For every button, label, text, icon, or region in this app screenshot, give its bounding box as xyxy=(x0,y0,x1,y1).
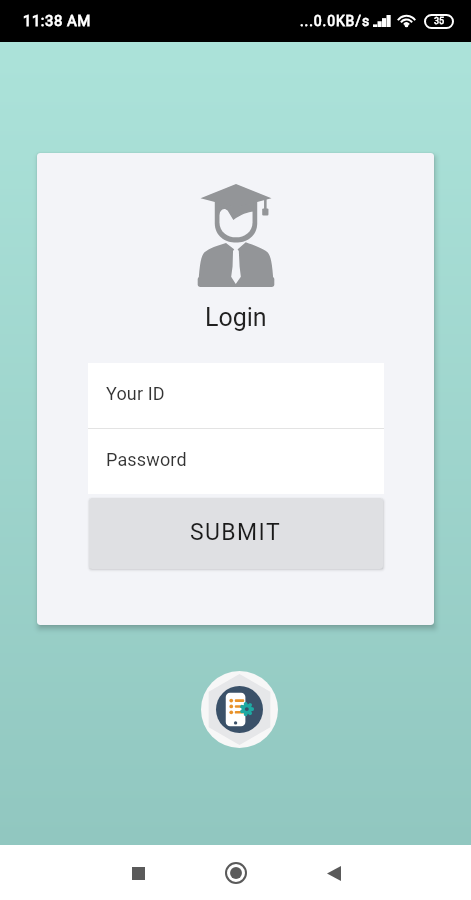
staticText: ...0.0KB/s xyxy=(300,13,371,29)
button[interactable]: SUBMIT xyxy=(89,498,383,569)
staticText: Login xyxy=(205,303,267,332)
staticText: 11:38 AM xyxy=(23,12,91,30)
staticText: Password xyxy=(106,449,187,470)
staticText: 35 xyxy=(434,16,445,27)
button[interactable]: Recents xyxy=(112,847,164,899)
button[interactable]: Your ID xyxy=(88,363,384,428)
button[interactable]: App icon xyxy=(201,671,278,748)
button[interactable]: Home xyxy=(210,847,262,899)
staticText: Your ID xyxy=(106,383,165,404)
button[interactable]: Password xyxy=(88,429,384,494)
button[interactable]: Back xyxy=(308,847,360,899)
staticText: SUBMIT xyxy=(190,519,282,546)
